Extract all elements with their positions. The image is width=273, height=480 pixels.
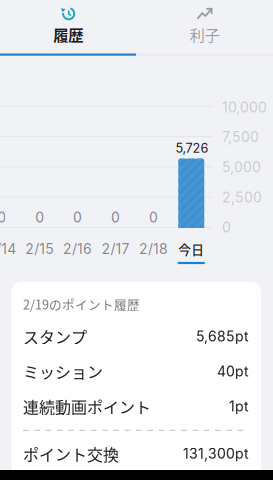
staticText: ミッション [23,360,103,383]
staticText: 5,000 [222,159,261,175]
staticText: 2/15 [25,240,54,257]
staticText: 0 [0,209,6,226]
staticText: 10,000 [222,99,267,116]
staticText: 0 [73,209,82,226]
staticText: 2/19のポイント履歴 [23,295,140,313]
staticText: 今日 [178,240,204,258]
staticText: 0 [111,209,120,226]
staticText: 連続動画ポイント [23,395,151,418]
staticText: 7,500 [222,128,259,145]
button[interactable]: 利子 [136,0,273,54]
staticText: 40pt [217,363,249,380]
staticText: 利子 [189,23,219,45]
staticText: ポイント交換 [23,442,119,465]
staticText: 0 [222,219,231,236]
staticText: 2/16 [63,240,92,257]
staticText: スタンプ [23,325,87,348]
button[interactable]: 履歴 [0,0,136,54]
staticText: 131,300pt [183,445,249,462]
staticText: 2/14 [0,240,16,257]
staticText: 2/17 [101,240,129,257]
staticText: 0 [149,209,158,226]
button[interactable]: 今日 [172,236,210,262]
staticText: 0 [35,209,44,226]
staticText: 2/18 [139,240,168,257]
staticText: 5,685pt [196,328,249,345]
staticText: 1pt [229,398,249,415]
staticText: 5,726 [175,140,208,156]
staticText: 2,500 [222,189,262,206]
staticText: 履歴 [53,23,83,45]
